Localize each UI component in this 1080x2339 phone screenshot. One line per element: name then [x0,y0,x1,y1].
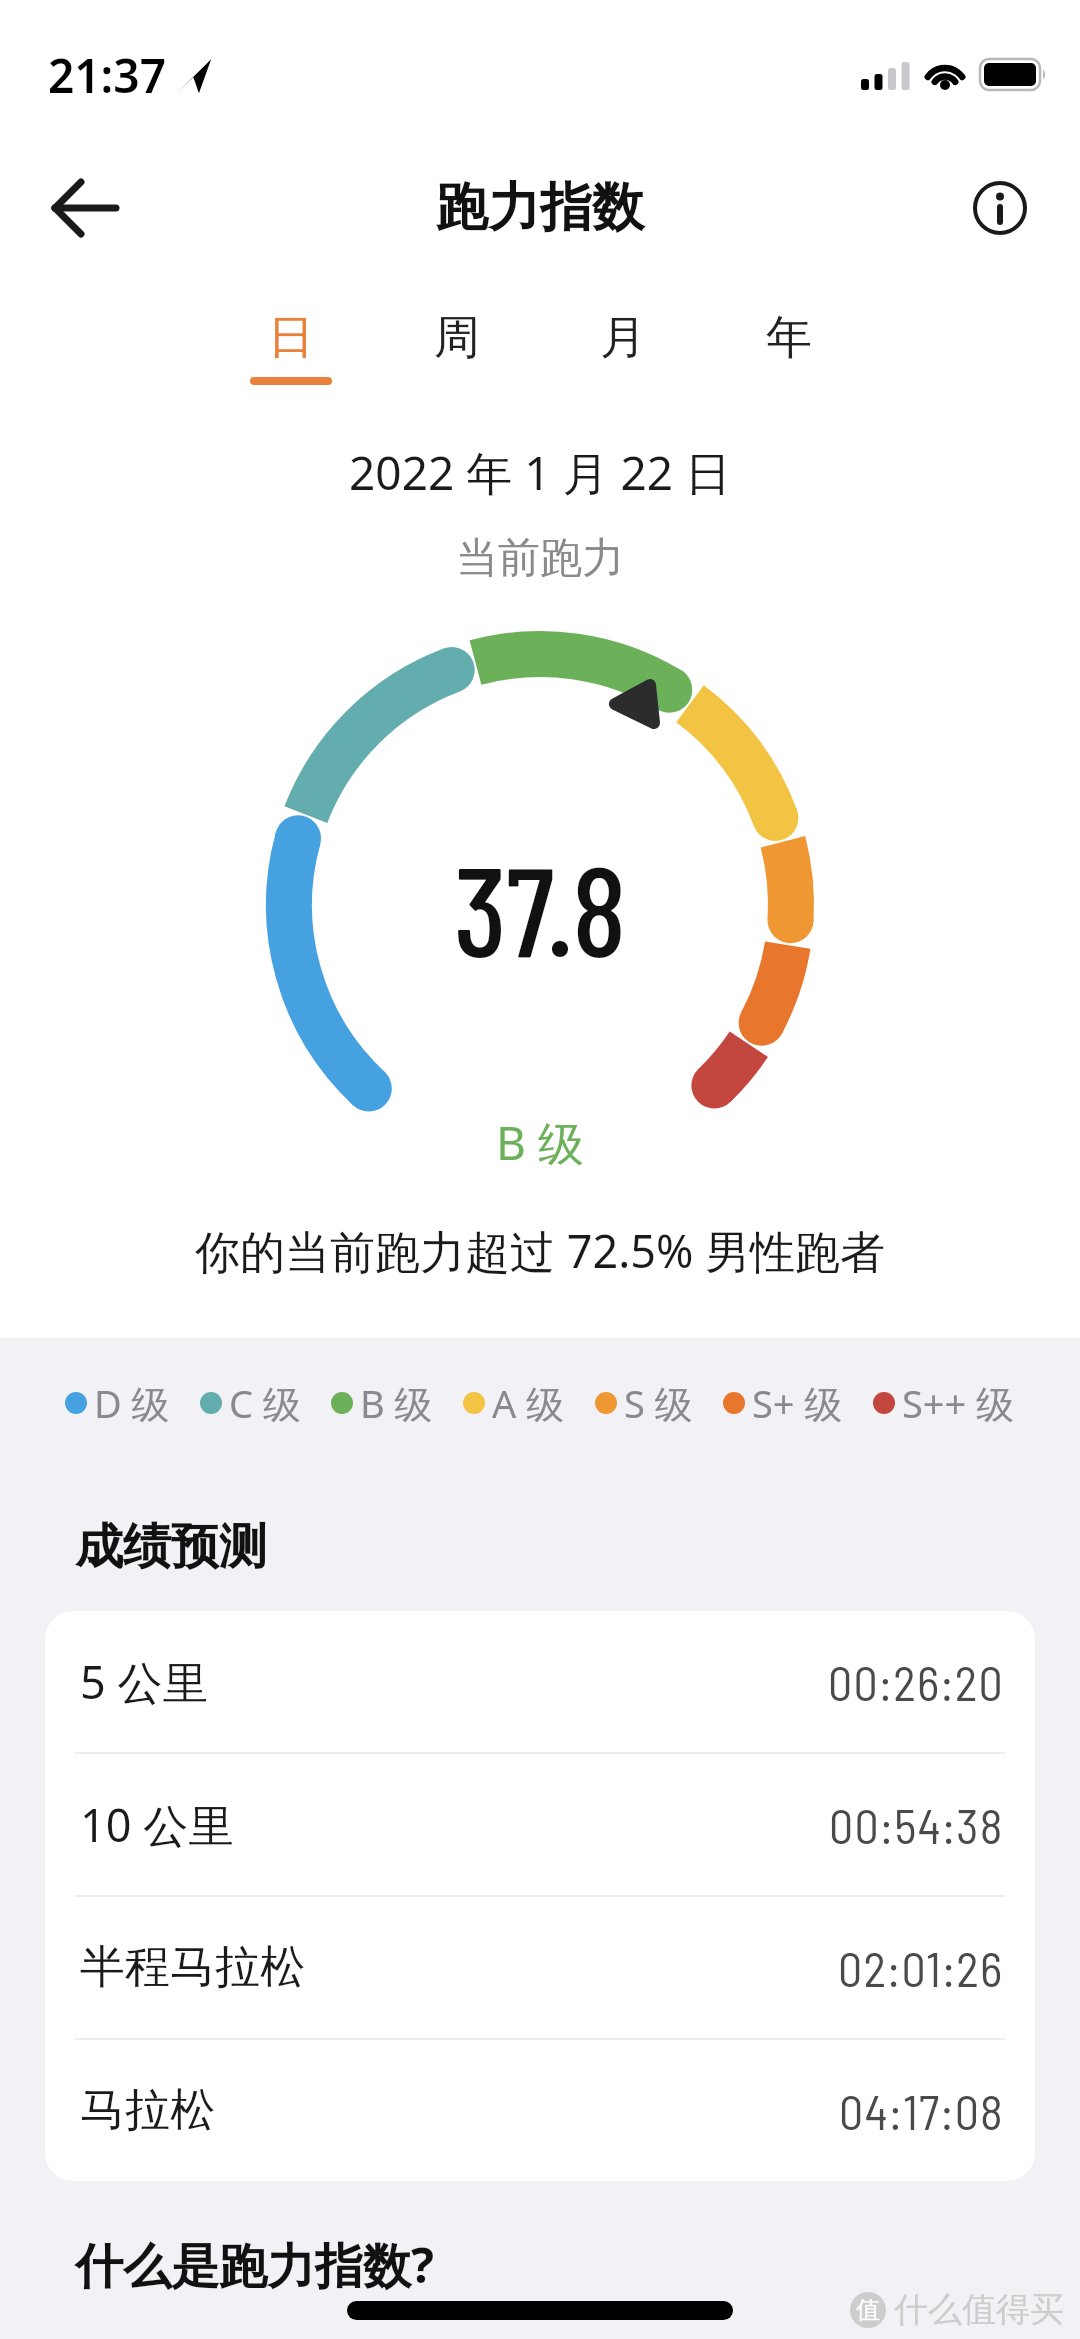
button[interactable]: 半程马拉松 [45,1897,1035,2038]
staticText: 跑力指数 [436,175,644,241]
staticText: 马拉松 [80,2082,215,2139]
staticText: 37.8 [454,831,626,982]
staticText: 什么是跑力指数? [75,2232,434,2298]
staticText: 月 [600,309,646,367]
staticText: 什么值得买 [894,2288,1064,2331]
button[interactable] [40,168,130,248]
staticText: 半程马拉松 [80,1939,305,1996]
staticText: 04:17:08 [839,2082,1004,2140]
staticText: 21:37 [48,44,166,107]
staticText: 你的当前跑力超过 72.5% 男性跑者 [0,1220,1080,1281]
staticText: 10 公里 [80,1794,234,1855]
button[interactable]: 5 公里 [45,1611,1035,1752]
staticText: 00:54:38 [829,1796,1004,1854]
staticText: S++ 级 [902,1377,1015,1429]
staticText: 5 公里 [80,1651,208,1712]
staticText: 周 [434,309,480,367]
staticText: A 级 [492,1377,565,1429]
button[interactable]: 年 [706,309,872,377]
staticText: 值 [856,2295,880,2325]
staticText: B 级 [360,1377,433,1429]
staticText: 00:26:20 [828,1653,1004,1711]
button[interactable]: 10 公里 [45,1754,1035,1895]
staticText: 02:01:26 [838,1939,1004,1997]
staticText: S 级 [624,1377,693,1429]
staticText: 2022 年 1 月 22 日 [0,441,1080,504]
staticText: D 级 [94,1377,170,1429]
button[interactable]: 日 [208,309,374,385]
staticText: 年 [766,309,812,367]
staticText: 成绩预测 [75,1517,267,1577]
staticText: C 级 [229,1377,301,1429]
staticText: B 级 [0,1111,1080,1174]
staticText: 当前跑力 [0,532,1080,585]
staticText: 日 [268,309,314,367]
button[interactable]: 马拉松 [45,2040,1035,2181]
button[interactable]: 周 [374,309,540,377]
staticText: S+ 级 [752,1377,843,1429]
button[interactable] [960,168,1040,248]
button[interactable]: 月 [540,309,706,377]
